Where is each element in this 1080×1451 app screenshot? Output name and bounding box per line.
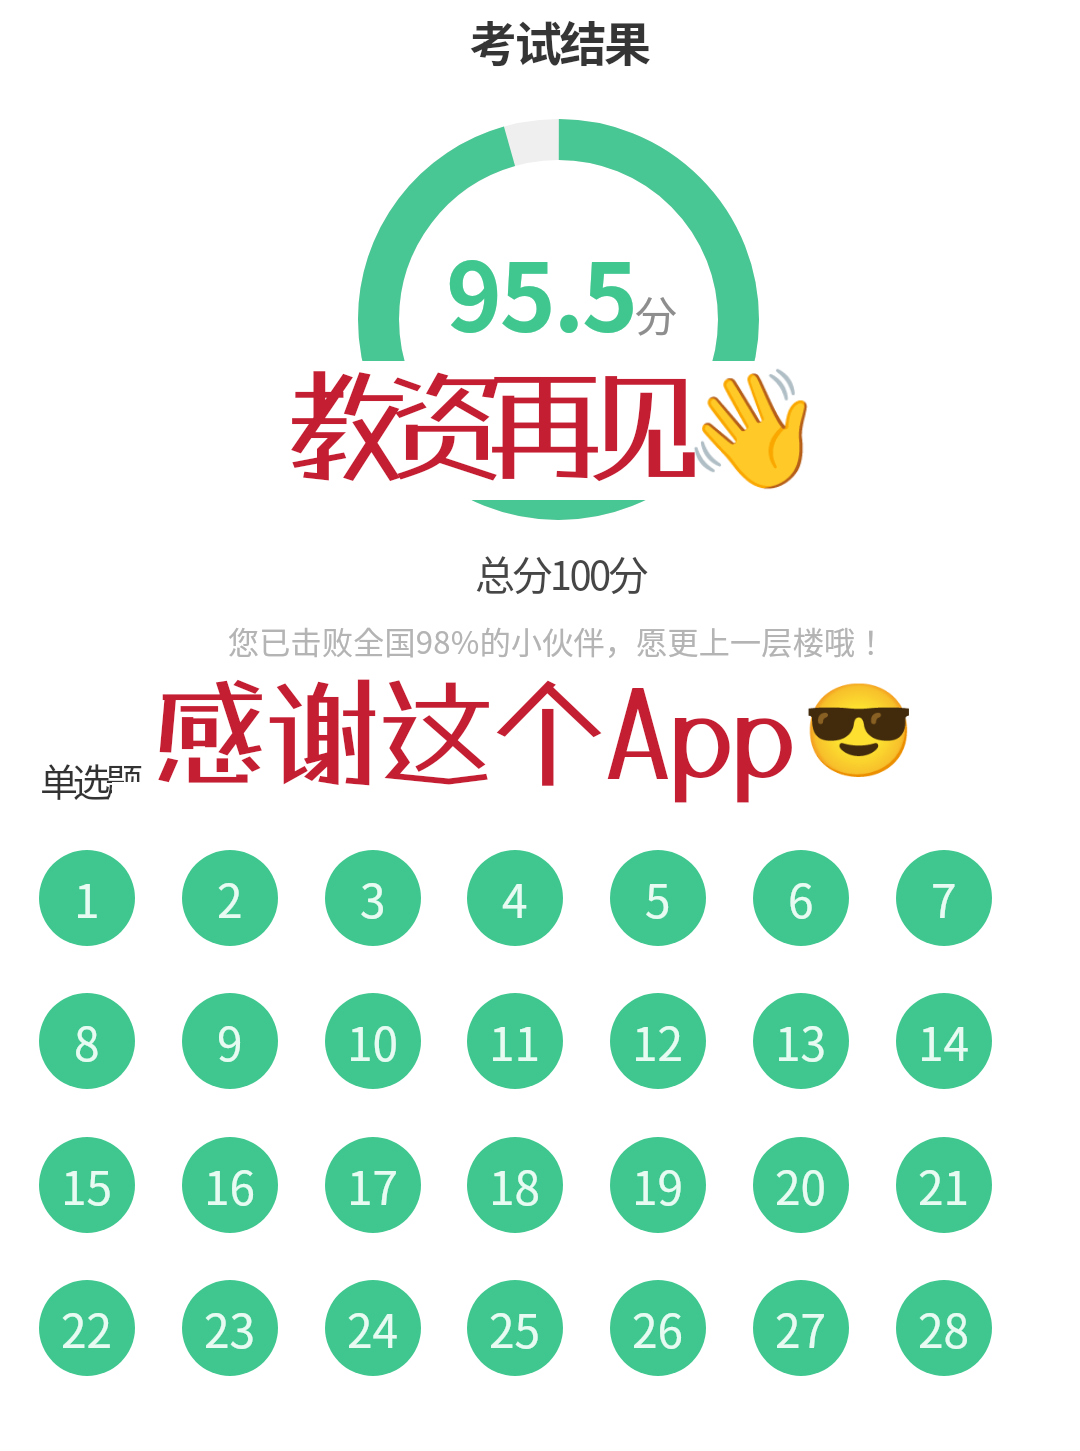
staticText: 25 <box>489 1295 541 1362</box>
staticText: 95.5 <box>446 222 636 360</box>
button[interactable]: 第26题 <box>610 1280 706 1376</box>
staticText: 教资再见 <box>285 352 682 498</box>
button[interactable]: 第9题 <box>182 993 278 1089</box>
staticText: 16 <box>204 1152 256 1219</box>
button[interactable]: 第16题 <box>182 1137 278 1233</box>
button[interactable]: 第3题 <box>325 850 421 946</box>
staticText: 15 <box>61 1152 113 1219</box>
button[interactable]: 第17题 <box>325 1137 421 1233</box>
staticText: 😎 <box>802 678 916 785</box>
staticText: 4 <box>502 865 528 932</box>
staticText: 10 <box>347 1008 399 1075</box>
button[interactable]: 第4题 <box>467 850 563 946</box>
staticText: 21 <box>918 1152 970 1219</box>
staticText: 单选题 <box>40 752 138 807</box>
button[interactable]: 第2题 <box>182 850 278 946</box>
staticText: 分 <box>635 283 678 344</box>
button[interactable]: 第8题 <box>39 993 135 1089</box>
staticText: 👋 <box>682 362 826 497</box>
button[interactable]: 第15题 <box>39 1137 135 1233</box>
button[interactable]: 第7题 <box>896 850 992 946</box>
staticText: 23 <box>204 1295 256 1362</box>
button[interactable]: 第14题 <box>896 993 992 1089</box>
staticText: 14 <box>918 1008 970 1075</box>
staticText: 18 <box>489 1152 541 1219</box>
staticText: 6 <box>788 865 814 932</box>
button[interactable]: 第11题 <box>467 993 563 1089</box>
button[interactable]: 第10题 <box>325 993 421 1089</box>
button[interactable]: 第12题 <box>610 993 706 1089</box>
staticText: 13 <box>775 1008 827 1075</box>
staticText: 9 <box>217 1008 243 1075</box>
button[interactable]: 第24题 <box>325 1280 421 1376</box>
button[interactable]: 第6题 <box>753 850 849 946</box>
button[interactable]: 第19题 <box>610 1137 706 1233</box>
staticText: 26 <box>632 1295 684 1362</box>
button[interactable]: 第27题 <box>753 1280 849 1376</box>
button[interactable]: 第13题 <box>753 993 849 1089</box>
staticText: 您已击败全国98%的小伙伴，愿更上一层楼哦！ <box>228 618 887 663</box>
staticText: 22 <box>61 1295 113 1362</box>
staticText: 1 <box>74 865 100 932</box>
button[interactable]: 第23题 <box>182 1280 278 1376</box>
button[interactable]: 第21题 <box>896 1137 992 1233</box>
staticText: 总分100分 <box>475 544 646 602</box>
button[interactable]: 第25题 <box>467 1280 563 1376</box>
staticText: 19 <box>632 1152 684 1219</box>
staticText: 17 <box>347 1152 399 1219</box>
staticText: 5 <box>645 865 671 932</box>
staticText: 考试结果 <box>470 6 649 74</box>
staticText: 7 <box>931 865 957 932</box>
staticText: 11 <box>489 1008 541 1075</box>
staticText: 3 <box>360 865 386 932</box>
staticText: 27 <box>775 1295 827 1362</box>
button[interactable]: 第20题 <box>753 1137 849 1233</box>
staticText: 24 <box>347 1295 399 1362</box>
staticText: 20 <box>775 1152 827 1219</box>
staticText: 12 <box>632 1008 684 1075</box>
staticText: 2 <box>217 865 243 932</box>
button[interactable]: 第1题 <box>39 850 135 946</box>
button[interactable]: 第28题 <box>896 1280 992 1376</box>
button[interactable]: 第5题 <box>610 850 706 946</box>
button[interactable]: 第22题 <box>39 1280 135 1376</box>
staticText: 8 <box>74 1008 100 1075</box>
button[interactable]: 第18题 <box>467 1137 563 1233</box>
staticText: 感谢这个App <box>150 661 792 803</box>
staticText: 28 <box>918 1295 970 1362</box>
